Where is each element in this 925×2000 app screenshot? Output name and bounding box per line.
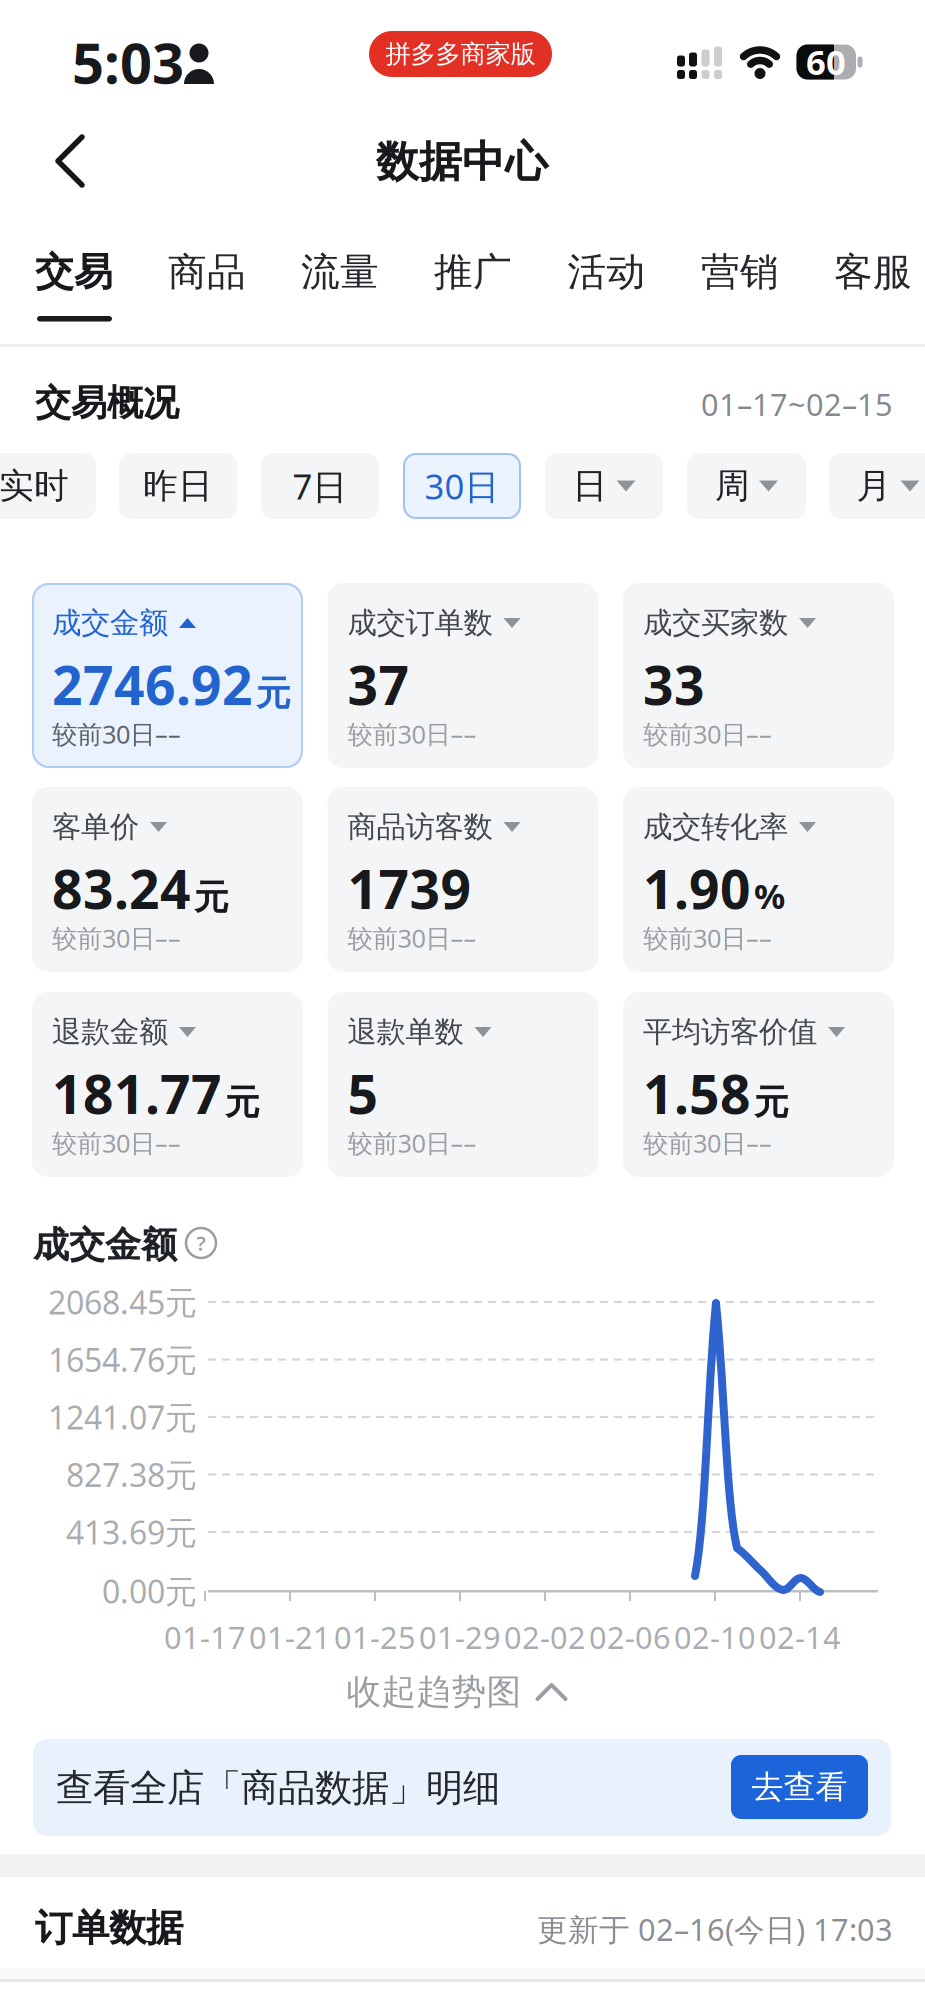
staticText: 月: [856, 465, 891, 507]
staticText: 1241.07元: [48, 1396, 197, 1438]
staticText: 较前30日––: [347, 921, 476, 955]
staticText: 02-10: [674, 1617, 756, 1657]
staticText: 平均访客价值: [643, 1014, 817, 1050]
button[interactable]: 日: [545, 453, 663, 519]
staticText: 订单数据: [35, 1905, 183, 1951]
staticText: 1.90: [643, 853, 751, 924]
button[interactable]: 月: [829, 453, 925, 519]
staticText: 客单价: [52, 809, 139, 845]
staticText: 拼多多商家版: [385, 38, 535, 69]
staticText: 较前30日––: [643, 1126, 772, 1160]
staticText: 去查看: [751, 1767, 847, 1807]
staticText: 1.58: [643, 1058, 751, 1129]
staticText: 181.77: [52, 1058, 222, 1129]
staticText: 交易: [35, 248, 113, 296]
button[interactable]: 商品访客数: [327, 787, 598, 972]
staticText: 退款单数: [347, 1014, 463, 1050]
staticText: 成交订单数: [347, 605, 492, 641]
staticText: 0.00元: [102, 1570, 197, 1612]
button[interactable]: 说明: [186, 1228, 216, 1258]
staticText: ?: [196, 1230, 205, 1256]
staticText: 01-17: [164, 1617, 246, 1657]
staticText: 较前30日––: [52, 717, 181, 751]
staticText: 交易概况: [35, 381, 179, 425]
button[interactable]: 客单价: [32, 787, 303, 972]
staticText: 37: [347, 649, 409, 720]
button[interactable]: 平均访客价值: [623, 992, 894, 1177]
staticText: 元: [256, 672, 291, 715]
button[interactable]: 成交订单数: [327, 583, 598, 768]
staticText: 营销: [701, 248, 779, 296]
button[interactable]: 30日: [403, 453, 521, 519]
staticText: 较前30日––: [643, 921, 772, 955]
staticText: 成交金额: [33, 1223, 177, 1267]
staticText: 客服: [834, 248, 912, 296]
staticText: 1654.76元: [48, 1338, 197, 1381]
button[interactable]: 流量: [280, 240, 400, 304]
staticText: 01-25: [334, 1617, 416, 1657]
staticText: 实时: [0, 465, 69, 507]
button[interactable]: 交易: [14, 240, 134, 304]
staticText: 2746.92: [52, 649, 253, 720]
button[interactable]: 推广: [413, 240, 533, 304]
staticText: 60: [806, 38, 846, 84]
button[interactable]: 7日: [261, 453, 379, 519]
button[interactable]: 成交买家数: [623, 583, 894, 768]
staticText: 查看全店「商品数据」明细: [56, 1765, 500, 1811]
button[interactable]: 成交金额: [32, 583, 303, 768]
staticText: 5:03: [72, 25, 184, 99]
staticText: 退款金额: [52, 1014, 168, 1050]
staticText: 较前30日––: [643, 717, 772, 751]
button[interactable]: 周: [687, 453, 806, 519]
staticText: 收起趋势图: [346, 1671, 521, 1713]
staticText: 成交金额: [52, 605, 168, 641]
staticText: 流量: [301, 248, 379, 296]
button[interactable]: 营销: [680, 240, 800, 304]
button[interactable]: 退款金额: [32, 992, 303, 1177]
staticText: 33: [643, 649, 705, 720]
staticText: 30日: [424, 463, 499, 509]
staticText: 商品: [168, 248, 246, 296]
staticText: 5: [347, 1058, 378, 1129]
button[interactable]: 去查看: [731, 1755, 868, 1819]
staticText: %: [754, 873, 785, 919]
staticText: 827.38元: [66, 1453, 197, 1496]
staticText: 活动: [567, 248, 645, 296]
button[interactable]: 退款单数: [327, 992, 598, 1177]
button[interactable]: 活动: [546, 240, 666, 304]
staticText: 元: [225, 1081, 260, 1124]
staticText: 周: [715, 465, 750, 507]
staticText: 83.24: [52, 853, 191, 924]
staticText: 01-21: [249, 1617, 331, 1657]
staticText: 成交转化率: [643, 809, 788, 845]
button[interactable]: 返回: [53, 132, 91, 190]
button[interactable]: 商品: [147, 240, 267, 304]
staticText: 较前30日––: [347, 717, 476, 751]
staticText: 较前30日––: [52, 921, 181, 955]
staticText: 日: [572, 465, 607, 507]
staticText: 2068.45元: [48, 1281, 197, 1323]
button[interactable]: 实时: [0, 453, 96, 519]
staticText: 成交买家数: [643, 605, 788, 641]
staticText: 昨日: [143, 465, 213, 507]
button[interactable]: 昨日: [119, 453, 237, 519]
staticText: 02-02: [504, 1617, 586, 1657]
staticText: 数据中心: [376, 136, 548, 188]
staticText: 01–17~02–15: [701, 384, 893, 424]
staticText: 推广: [434, 248, 512, 296]
staticText: 413.69元: [66, 1511, 197, 1553]
staticText: 02-06: [589, 1617, 671, 1657]
staticText: 较前30日––: [52, 1126, 181, 1160]
staticText: 商品访客数: [347, 809, 492, 845]
staticText: 更新于 02–16(今日) 17:03: [537, 1909, 893, 1949]
button[interactable]: 客服: [813, 240, 925, 304]
staticText: 元: [194, 876, 229, 919]
staticText: 7日: [292, 463, 347, 509]
staticText: 01-29: [419, 1617, 501, 1657]
staticText: 较前30日––: [347, 1126, 476, 1160]
button[interactable]: 收起趋势图: [346, 1671, 565, 1713]
staticText: 1739: [347, 853, 471, 924]
staticText: 元: [754, 1081, 789, 1124]
button[interactable]: 成交转化率: [623, 787, 894, 972]
button[interactable]: 拼多多商家版: [369, 31, 552, 77]
